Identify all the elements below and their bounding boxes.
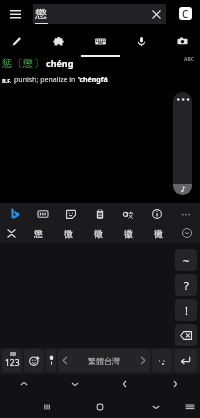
button[interactable]: Voice input <box>126 30 156 52</box>
staticText: ，。 <box>157 356 168 363</box>
button[interactable]: Enter <box>174 349 197 372</box>
button[interactable]: Home <box>83 396 117 418</box>
button[interactable]: Keyboard <box>85 30 115 52</box>
button[interactable]: Backspace <box>175 324 197 346</box>
button[interactable]: 徽 <box>114 224 142 242</box>
button[interactable]: Up <box>4 374 44 394</box>
staticText: ! <box>185 303 188 318</box>
button[interactable]: Punctuation <box>152 349 172 372</box>
staticText: punish; penalize in <box>14 75 78 85</box>
staticText: 'chéngfá <box>78 75 108 85</box>
staticText: 徽 <box>124 228 133 239</box>
button[interactable]: Back <box>139 396 173 418</box>
staticText: 惩〔懲〕 <box>2 57 44 70</box>
staticText: C <box>182 7 189 20</box>
button[interactable]: ! <box>175 299 197 321</box>
button[interactable]: Translate <box>115 204 141 223</box>
button[interactable]: More <box>173 204 199 223</box>
staticText: ~ <box>183 253 190 268</box>
button[interactable]: Camera <box>167 30 197 52</box>
button[interactable]: Handwriting <box>1 30 31 52</box>
staticText: B.F. <box>2 77 12 84</box>
staticText: 徵 <box>94 228 103 239</box>
button[interactable]: Left <box>105 374 145 394</box>
button[interactable]: Sticker <box>58 204 84 223</box>
button[interactable]: Recents <box>30 396 64 418</box>
button[interactable]: 懲 <box>33 4 166 24</box>
button[interactable]: ~ <box>175 249 197 271</box>
button[interactable]: 黴 <box>144 224 172 242</box>
staticText: 黴 <box>154 228 163 239</box>
staticText: 懲 <box>34 228 43 239</box>
staticText: ABC <box>184 56 194 63</box>
button[interactable]: 繁體台灣 <box>58 349 150 372</box>
button[interactable]: Emoji <box>24 349 44 372</box>
button[interactable]: Numbers <box>2 349 22 372</box>
button[interactable]: Switch keyboard <box>173 396 200 418</box>
button[interactable]: Collapse <box>1 224 21 242</box>
staticText: ? <box>184 278 189 293</box>
button[interactable]: Stickers <box>43 30 73 52</box>
button[interactable]: Clipboard <box>87 204 113 223</box>
button[interactable]: Expand candidates <box>177 224 197 242</box>
button[interactable]: Down <box>55 374 95 394</box>
staticText: chéng <box>46 57 74 69</box>
button[interactable]: C <box>179 7 192 20</box>
staticText: 微 <box>64 228 73 239</box>
staticText: 懲 <box>35 7 47 21</box>
button[interactable]: ? <box>175 274 197 296</box>
button[interactable]: Clear <box>147 4 165 24</box>
button[interactable]: Search <box>1 204 27 223</box>
button[interactable]: More options <box>173 92 192 195</box>
staticText: 繁體台灣 <box>88 356 120 366</box>
button[interactable]: 徵 <box>84 224 112 242</box>
button[interactable]: Voice input <box>46 349 56 372</box>
button[interactable]: GIF <box>30 204 56 223</box>
staticText: 123 <box>5 357 20 369</box>
button[interactable]: 微 <box>54 224 82 242</box>
button[interactable]: Right <box>155 374 195 394</box>
button[interactable]: Menu <box>3 2 27 26</box>
button[interactable]: 懲 <box>24 224 52 242</box>
button[interactable]: Info <box>144 204 170 223</box>
